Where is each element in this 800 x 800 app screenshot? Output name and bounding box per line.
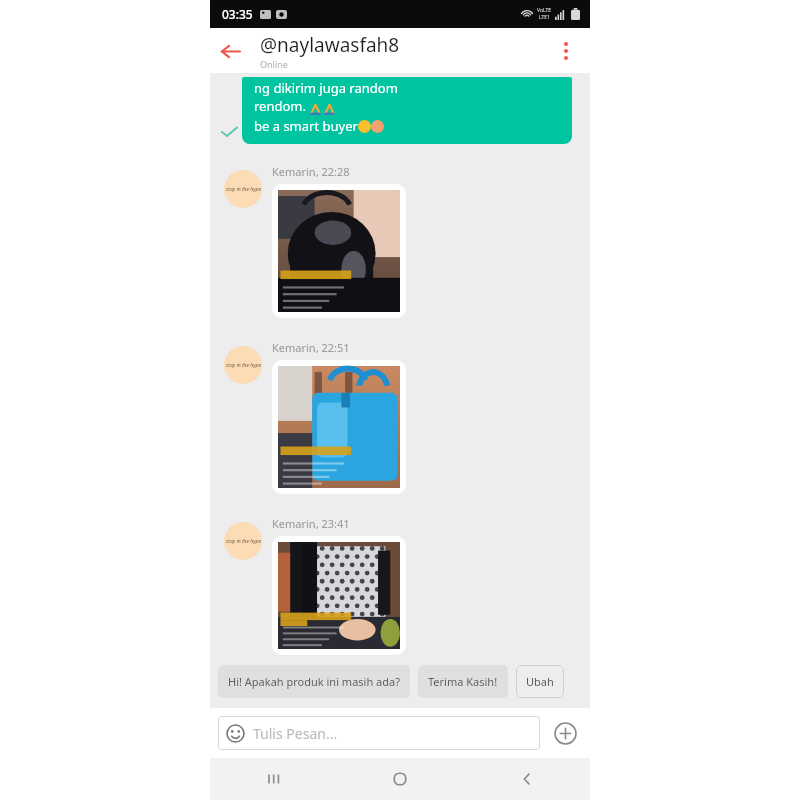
staticText: be a smart buyer — [254, 117, 358, 135]
button[interactable]: ng dikirim juga random — [242, 77, 572, 144]
button[interactable]: Ubah — [516, 665, 564, 698]
staticText: @naylawasfah8 — [260, 32, 400, 58]
staticText: LTE1 — [539, 14, 550, 21]
staticText: stay in the hype — [226, 362, 261, 369]
button[interactable]: Back — [210, 31, 250, 71]
staticText: VoLTE — [537, 7, 552, 14]
staticText: Terima Kasih! — [428, 674, 498, 689]
staticText: Hi! Apakah produk ini masih ada? — [228, 674, 400, 689]
staticText: rendom. — [254, 97, 310, 115]
button[interactable]: stay in the hype — [224, 346, 262, 384]
staticText: Online — [260, 58, 288, 70]
button[interactable]: Back — [463, 758, 590, 800]
staticText: Ubah — [526, 674, 554, 689]
staticText: stay in the hype — [226, 538, 261, 545]
staticText: Kemarin, 22:51 — [272, 340, 350, 355]
button[interactable] — [272, 360, 406, 494]
button[interactable]: Hi! Apakah produk ini masih ada? — [218, 665, 410, 698]
button[interactable]: Attach — [548, 716, 582, 750]
staticText: stay in the hype — [226, 186, 261, 193]
staticText: ng dikirim juga random — [254, 79, 398, 97]
button[interactable] — [272, 184, 406, 318]
staticText: 03:35 — [222, 6, 253, 22]
button[interactable]: Home — [336, 758, 463, 800]
staticText: Kemarin, 23:41 — [272, 516, 350, 531]
button[interactable] — [272, 536, 406, 655]
button[interactable]: Recents — [210, 758, 336, 800]
button[interactable]: stay in the hype — [224, 522, 262, 560]
button[interactable]: More options — [548, 33, 584, 69]
button[interactable]: Terima Kasih! — [418, 665, 508, 698]
staticText: Tulis Pesan... — [253, 724, 338, 743]
button[interactable]: stay in the hype — [224, 170, 262, 208]
staticText: Kemarin, 22:28 — [272, 164, 350, 179]
button[interactable]: Tulis Pesan... — [218, 716, 540, 750]
